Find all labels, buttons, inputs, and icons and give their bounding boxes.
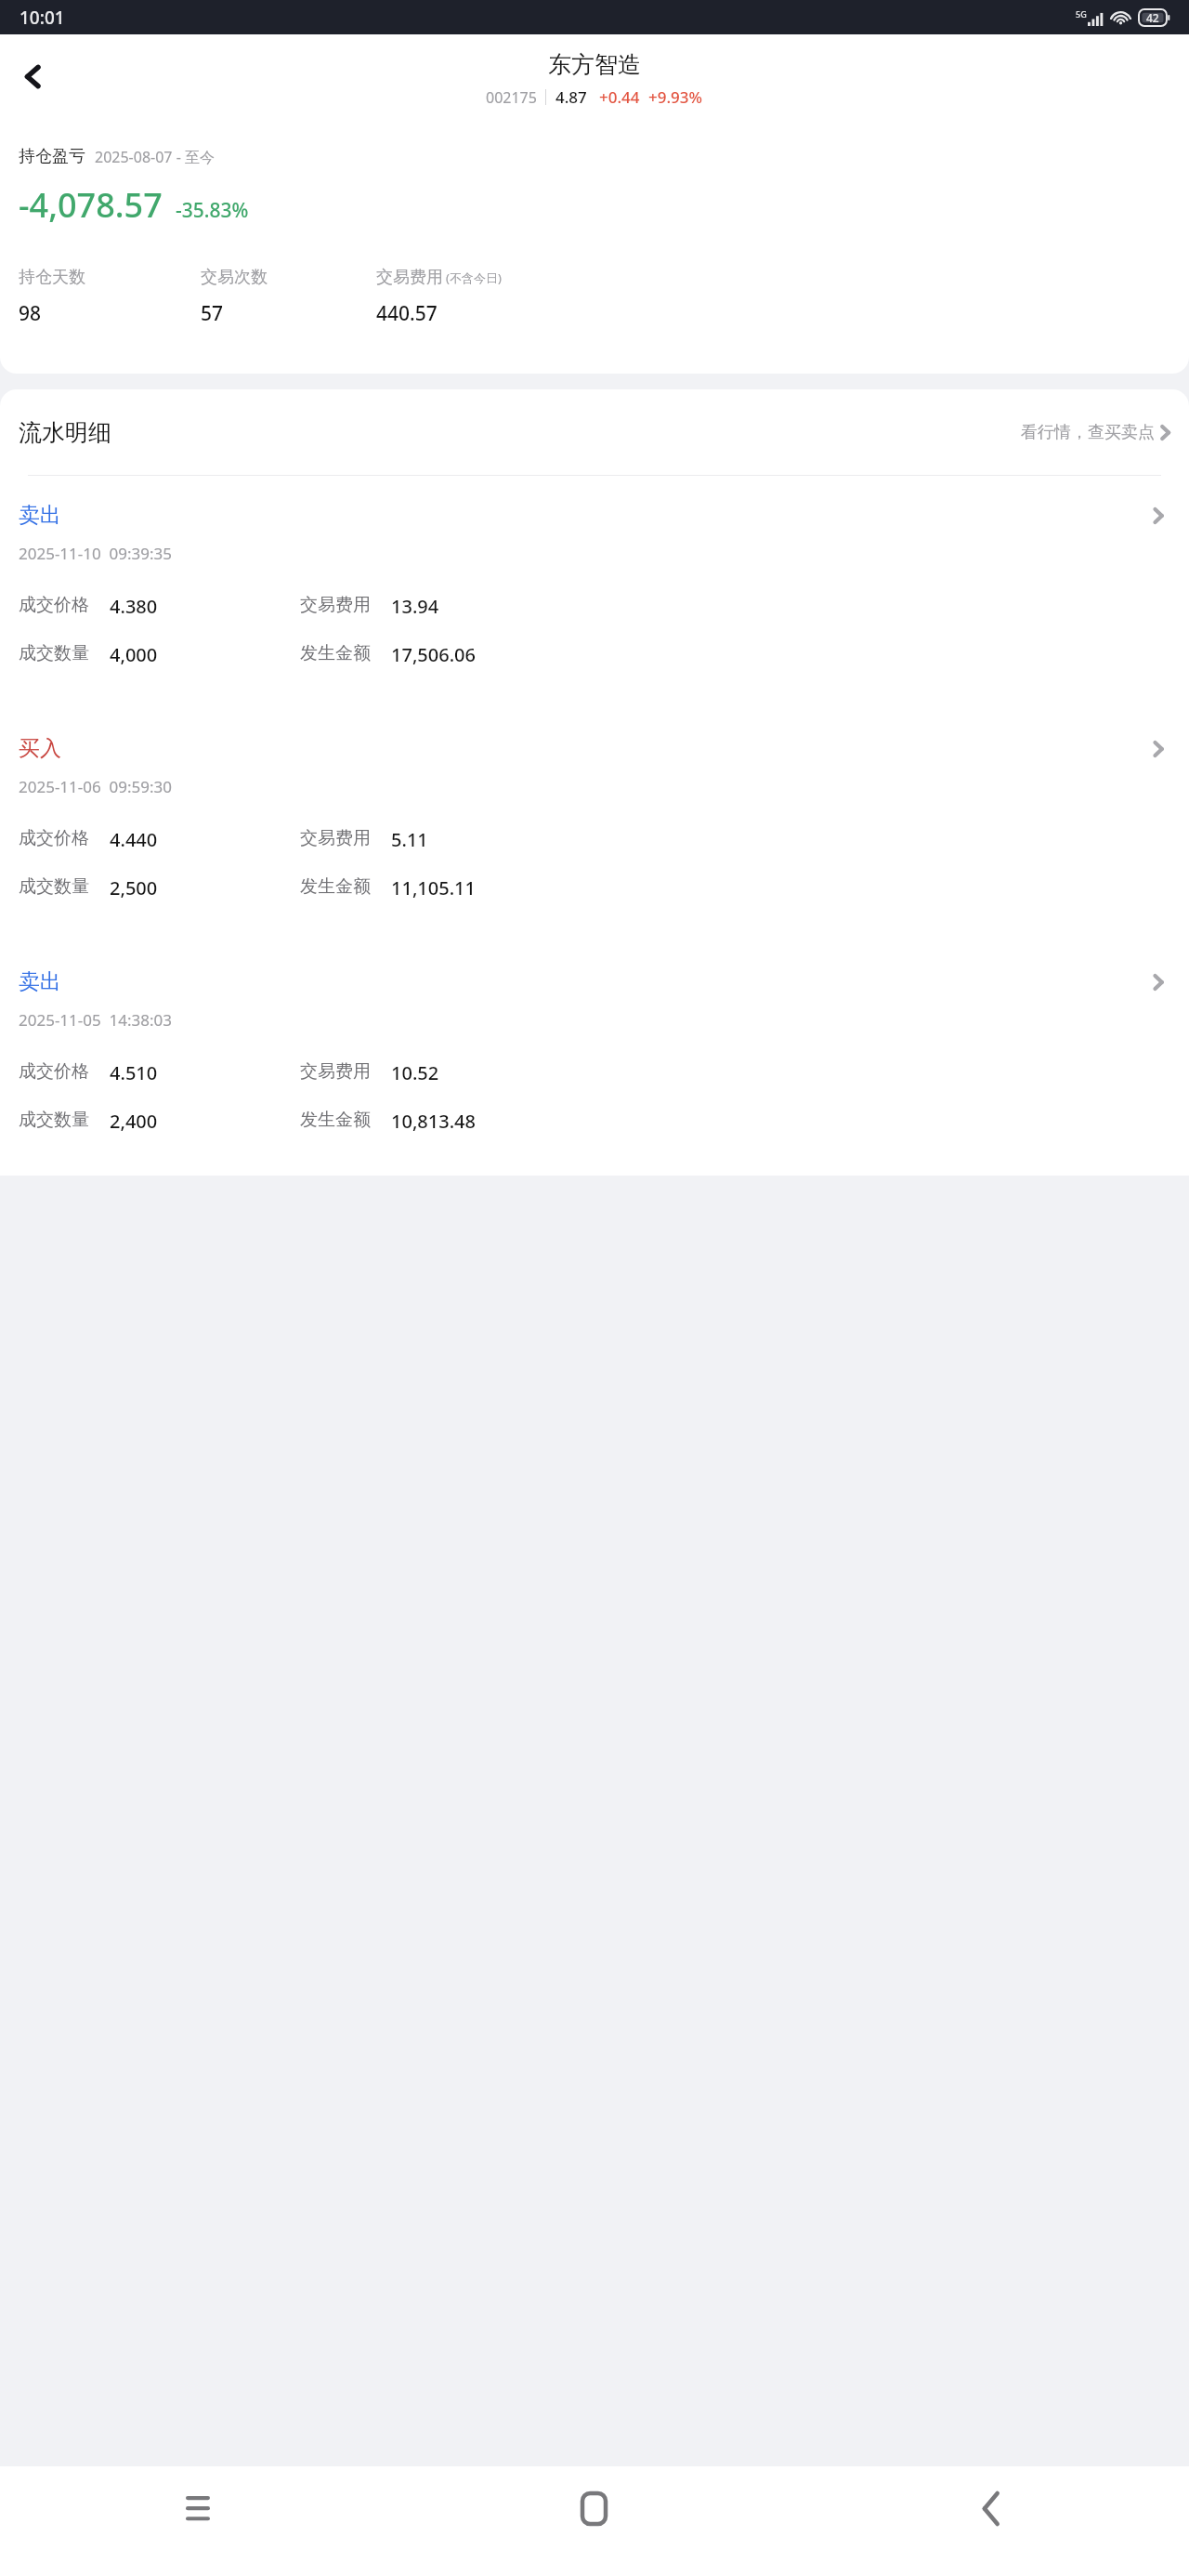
- staticText: 卖出: [19, 968, 61, 995]
- button[interactable]: 看行情，查买卖点: [1015, 414, 1178, 451]
- staticText: 4.510: [110, 1060, 158, 1085]
- staticText: (不含今日): [446, 269, 502, 286]
- staticText: 440.57: [376, 300, 438, 327]
- staticText: 发生金额: [300, 642, 371, 664]
- staticText: 交易次数: [201, 267, 268, 288]
- staticText: 持仓天数: [19, 267, 85, 288]
- staticText: 持仓盈亏: [19, 146, 85, 167]
- staticText: 4.87: [555, 86, 587, 108]
- staticText: 流水明细: [19, 418, 111, 447]
- button[interactable]: Home: [396, 2466, 792, 2576]
- staticText: 成交价格: [19, 594, 89, 616]
- staticText: 买入: [19, 735, 61, 762]
- staticText: 2025-11-10 09:39:35: [19, 543, 173, 564]
- staticText: 2025-11-05 14:38:03: [19, 1009, 173, 1031]
- staticText: +9.93%: [648, 86, 703, 108]
- staticText: 5.11: [391, 827, 428, 852]
- staticText: 4,000: [110, 642, 158, 667]
- staticText: 成交数量: [19, 1109, 89, 1131]
- staticText: 42: [1146, 10, 1159, 25]
- button[interactable]: 卖出: [0, 942, 1189, 1176]
- staticText: 10:01: [20, 6, 65, 30]
- staticText: 57: [201, 300, 224, 327]
- staticText: -35.83%: [176, 197, 249, 224]
- staticText: 东方智造: [548, 50, 641, 79]
- staticText: 13.94: [391, 594, 439, 619]
- staticText: 002175: [486, 87, 537, 108]
- button[interactable]: Back: [6, 49, 59, 103]
- staticText: 发生金额: [300, 1109, 371, 1131]
- staticText: 发生金额: [300, 875, 371, 898]
- staticText: 10,813.48: [391, 1109, 476, 1134]
- staticText: 交易费用: [300, 594, 371, 616]
- staticText: 17,506.06: [391, 642, 476, 667]
- staticText: 4.440: [110, 827, 158, 852]
- staticText: 卖出: [19, 502, 61, 529]
- staticText: 11,105.11: [391, 875, 476, 900]
- staticText: 成交数量: [19, 875, 89, 898]
- button[interactable]: Recents: [0, 2466, 396, 2576]
- staticText: 成交数量: [19, 642, 89, 664]
- staticText: 2,500: [110, 875, 158, 900]
- staticText: 看行情，查买卖点: [1021, 422, 1155, 443]
- staticText: 4.380: [110, 594, 158, 619]
- staticText: 10.52: [391, 1060, 439, 1085]
- staticText: +0.44: [599, 86, 640, 108]
- button[interactable]: Back: [792, 2466, 1189, 2576]
- staticText: 交易费用: [300, 827, 371, 849]
- staticText: 2025-08-07 - 至今: [95, 147, 215, 167]
- staticText: 交易费用: [300, 1060, 371, 1083]
- staticText: 2025-11-06 09:59:30: [19, 776, 173, 797]
- staticText: 2,400: [110, 1109, 158, 1134]
- staticText: 5G: [1076, 8, 1087, 20]
- staticText: 交易费用: [376, 267, 443, 288]
- staticText: 成交价格: [19, 827, 89, 849]
- staticText: 98: [19, 300, 42, 327]
- button[interactable]: 买入: [0, 709, 1189, 942]
- staticText: -4,078.57: [19, 182, 163, 228]
- button[interactable]: 卖出: [0, 476, 1189, 709]
- staticText: 成交价格: [19, 1060, 89, 1083]
